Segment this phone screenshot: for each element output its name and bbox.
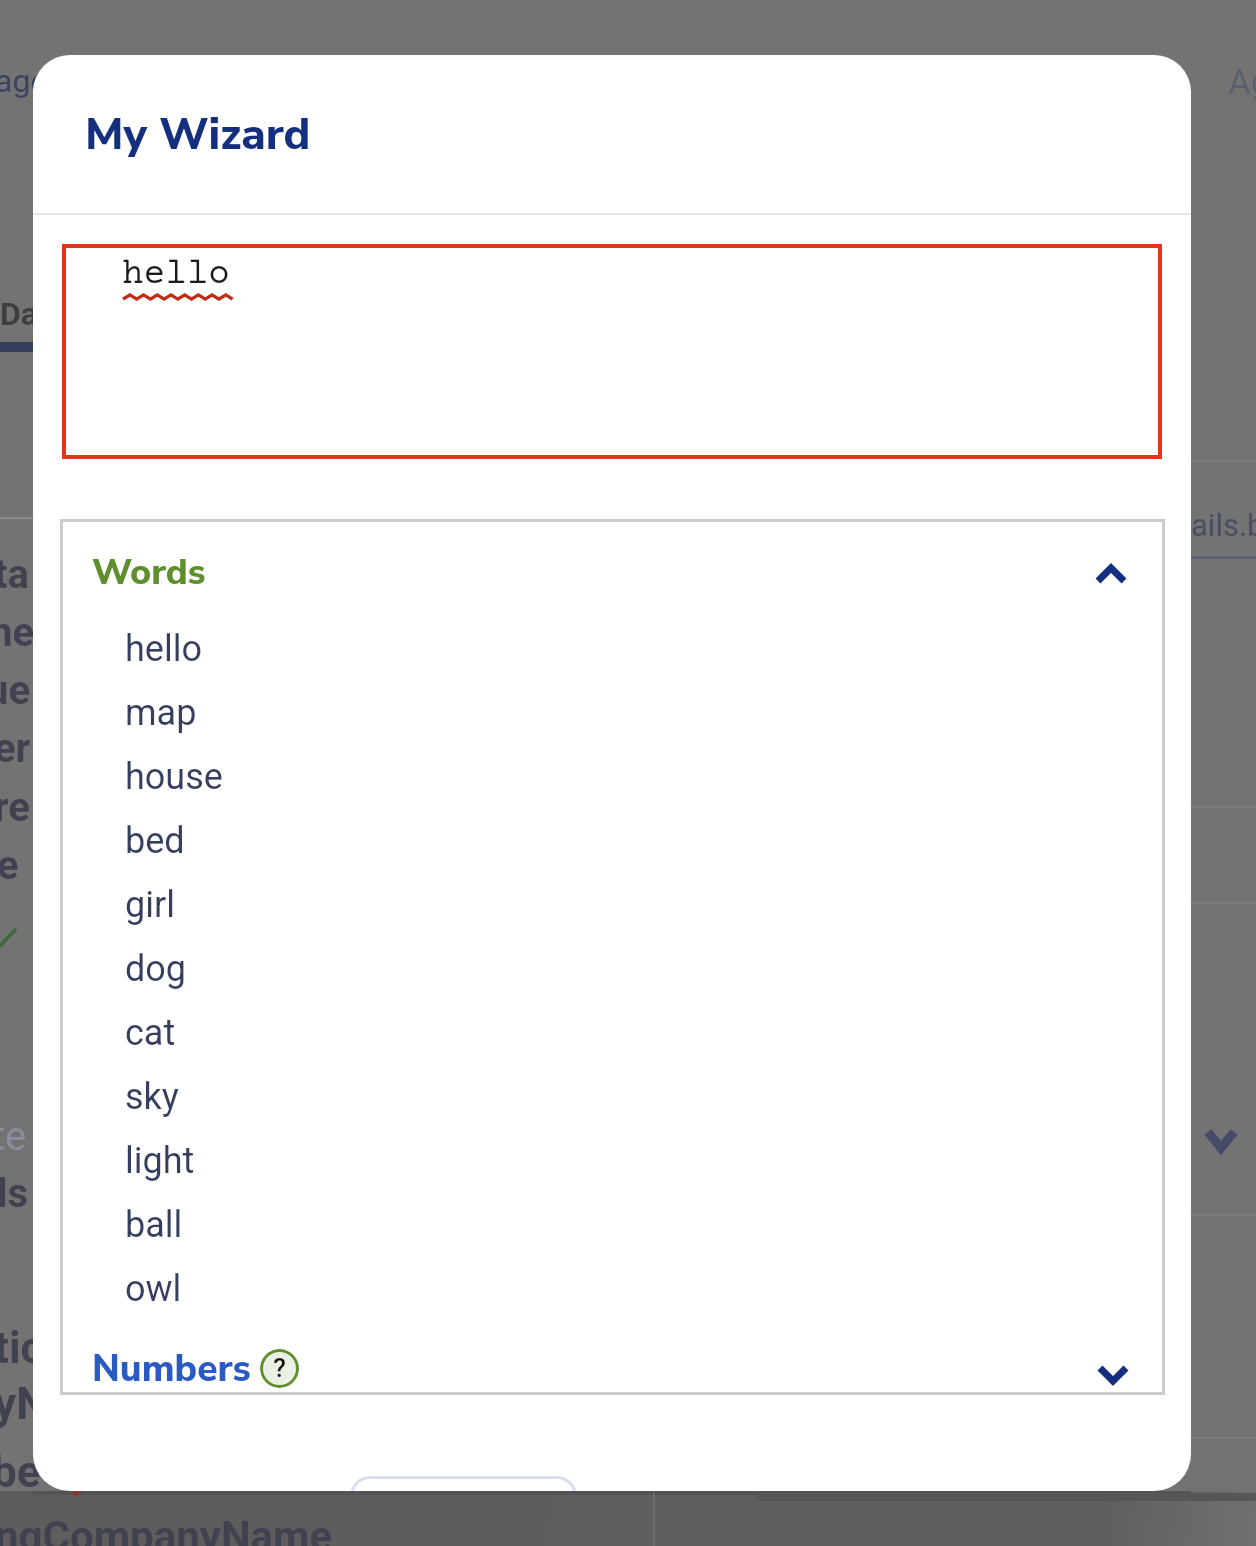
staticText: bed (125, 820, 185, 862)
button[interactable]: Words (60, 519, 1165, 627)
staticText: ball (125, 1204, 183, 1246)
staticText: hello (122, 255, 230, 295)
staticText: house (125, 756, 223, 798)
button[interactable]: house (60, 745, 1165, 809)
staticText: ne (0, 609, 35, 656)
button[interactable]: ball (60, 1193, 1165, 1257)
staticText: Words (92, 548, 206, 597)
button[interactable]: Numbers (60, 1336, 1165, 1392)
staticText: yN (0, 1378, 48, 1430)
button[interactable]: dog (60, 937, 1165, 1001)
staticText: ? (273, 1353, 286, 1383)
button[interactable]: bed (60, 809, 1165, 873)
button[interactable]: Expand section (1085, 1346, 1141, 1402)
staticText: light (125, 1140, 195, 1182)
staticText: map (125, 692, 197, 734)
button[interactable]: hello (60, 617, 1165, 681)
staticText: ls (0, 1170, 29, 1217)
staticText: owl (125, 1268, 182, 1310)
staticText: ta (0, 551, 29, 598)
staticText: re (0, 784, 30, 831)
staticText: te (0, 1113, 27, 1160)
staticText: Ag (1228, 62, 1256, 103)
staticText: ails.b (1191, 507, 1256, 543)
staticText: dog (125, 948, 187, 990)
button[interactable]: Help (260, 1349, 299, 1388)
staticText: hello (125, 628, 202, 670)
staticText: girl (125, 884, 175, 926)
staticText: ngCompanyName (0, 1512, 333, 1546)
staticText: ue (0, 667, 31, 714)
staticText: tic (0, 1322, 44, 1374)
button[interactable]: girl (60, 873, 1165, 937)
button[interactable]: owl (60, 1257, 1165, 1321)
button[interactable] (350, 1476, 577, 1491)
button[interactable]: Collapse section (1083, 546, 1139, 602)
staticText: er (0, 725, 31, 772)
button[interactable]: light (60, 1129, 1165, 1193)
staticText: sky (125, 1076, 179, 1118)
staticText: be (0, 1446, 41, 1498)
button[interactable]: cat (60, 1001, 1165, 1065)
staticText: My Wizard (85, 105, 311, 165)
button[interactable]: sky (60, 1065, 1165, 1129)
staticText: e (0, 842, 19, 889)
staticText: Da (0, 295, 38, 333)
staticText: Numbers (92, 1344, 251, 1394)
staticText: age (0, 62, 48, 100)
staticText: cat (125, 1012, 176, 1054)
button[interactable]: map (60, 681, 1165, 745)
